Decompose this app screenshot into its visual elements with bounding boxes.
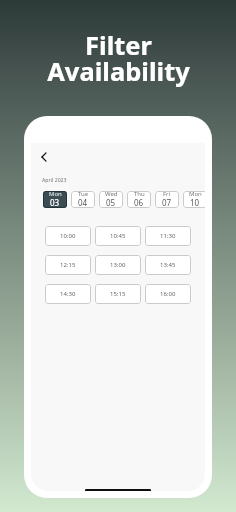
button[interactable]: 10:00 bbox=[45, 226, 91, 246]
button[interactable]: 15:15 bbox=[95, 284, 141, 304]
staticText: 14:30 bbox=[60, 290, 76, 298]
button[interactable]: 11:30 bbox=[145, 226, 191, 246]
staticText: Fri bbox=[163, 191, 171, 198]
staticText: 15:15 bbox=[110, 290, 126, 298]
staticText: Thu bbox=[134, 191, 145, 198]
button[interactable]: 13:00 bbox=[95, 255, 141, 275]
staticText: 10:45 bbox=[110, 232, 126, 240]
staticText: Wed bbox=[105, 191, 118, 198]
button[interactable]: 16:00 bbox=[145, 284, 191, 304]
staticText: 06 bbox=[134, 197, 144, 208]
staticText: 12:15 bbox=[60, 261, 76, 269]
button[interactable]: 13:45 bbox=[145, 255, 191, 275]
staticText: April 2023 bbox=[42, 176, 67, 183]
button[interactable]: 12:15 bbox=[45, 255, 91, 275]
staticText: Mon bbox=[49, 191, 62, 198]
staticText: 13:45 bbox=[160, 261, 176, 269]
button[interactable]: Thu bbox=[127, 191, 151, 208]
staticText: Mon bbox=[189, 191, 202, 198]
button[interactable]: Tue bbox=[71, 191, 95, 208]
staticText: 16:00 bbox=[160, 290, 176, 298]
button[interactable]: Wed bbox=[99, 191, 123, 208]
staticText: 05 bbox=[106, 197, 116, 208]
staticText: 11:30 bbox=[160, 232, 176, 240]
button[interactable]: Mon bbox=[183, 191, 205, 208]
staticText: 03 bbox=[50, 197, 60, 208]
staticText: Tue bbox=[78, 191, 89, 198]
staticText: 04 bbox=[78, 197, 88, 208]
button[interactable]: 14:30 bbox=[45, 284, 91, 304]
staticText: 13:00 bbox=[110, 261, 126, 269]
staticText: 07 bbox=[162, 197, 172, 208]
staticText: 10 bbox=[190, 197, 200, 208]
button[interactable]: Mon bbox=[43, 191, 67, 208]
button[interactable]: Back bbox=[36, 149, 52, 165]
button[interactable]: Fri bbox=[155, 191, 179, 208]
staticText: 10:00 bbox=[60, 232, 76, 240]
staticText: Filter Availability bbox=[47, 28, 190, 88]
button[interactable]: 10:45 bbox=[95, 226, 141, 246]
